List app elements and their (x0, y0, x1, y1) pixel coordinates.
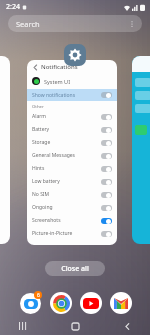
button[interactable]: System UI (32, 73, 117, 89)
button[interactable]: Ongoing (32, 201, 112, 214)
staticText: Alarm (32, 113, 101, 120)
staticText: Ongoing (32, 204, 101, 211)
button[interactable]: Off (101, 114, 112, 120)
staticText: Low battery (32, 178, 101, 185)
button[interactable]: Close all (45, 261, 105, 276)
button[interactable]: Off (101, 166, 112, 172)
button[interactable]: Low battery (32, 175, 112, 188)
staticText: 6 (37, 292, 40, 299)
button[interactable]: Battery (32, 123, 112, 136)
staticText: Battery (32, 126, 101, 133)
staticText: Other (32, 103, 44, 109)
button[interactable]: Camera (18, 291, 42, 315)
button[interactable]: Off (101, 192, 112, 198)
button[interactable]: Off (101, 231, 112, 237)
staticText: No SIM (32, 191, 101, 198)
staticText: General Messages (32, 152, 101, 159)
staticText: Storage (32, 139, 101, 146)
staticText: Screenshots (32, 217, 101, 224)
button[interactable]: Back (118, 317, 136, 335)
button[interactable]: Storage (32, 136, 112, 149)
button[interactable]: Settings app (64, 44, 86, 66)
staticText: Show notifications (32, 92, 101, 99)
button[interactable]: Off (101, 140, 112, 146)
button[interactable]: Off (101, 153, 112, 159)
button[interactable]: Back (27, 60, 117, 245)
button[interactable]: Hints (32, 162, 112, 175)
button[interactable]: Recents (14, 317, 32, 335)
staticText: Close all (61, 264, 89, 274)
button[interactable]: Screenshots (32, 214, 112, 227)
button[interactable]: More options (127, 19, 137, 29)
button[interactable]: Off (101, 179, 112, 185)
button[interactable]: Home (66, 317, 84, 335)
button[interactable]: General Messages (32, 149, 112, 162)
staticText: Hints (32, 165, 101, 172)
button[interactable] (132, 56, 150, 244)
staticText: Picture-in-Picture (32, 230, 101, 237)
button[interactable]: Show notifications (32, 89, 112, 101)
button[interactable]: No SIM (32, 188, 112, 201)
button[interactable]: Off (101, 92, 112, 98)
staticText: Notifications (41, 63, 78, 71)
button[interactable]: On (101, 218, 112, 224)
button[interactable] (0, 56, 10, 244)
staticText: System UI (44, 78, 71, 85)
button[interactable]: Search (8, 15, 142, 32)
button[interactable]: Chrome (50, 292, 72, 314)
button[interactable]: Off (101, 127, 112, 133)
button[interactable]: Alarm (32, 110, 112, 123)
button[interactable]: YouTube (80, 292, 102, 314)
staticText: 2:24 (6, 2, 20, 12)
button[interactable]: Picture-in-Picture (32, 227, 112, 240)
button[interactable]: Gmail (110, 292, 132, 314)
staticText: Search (16, 19, 40, 29)
button[interactable]: Back (31, 63, 39, 71)
button[interactable]: Off (101, 205, 112, 211)
